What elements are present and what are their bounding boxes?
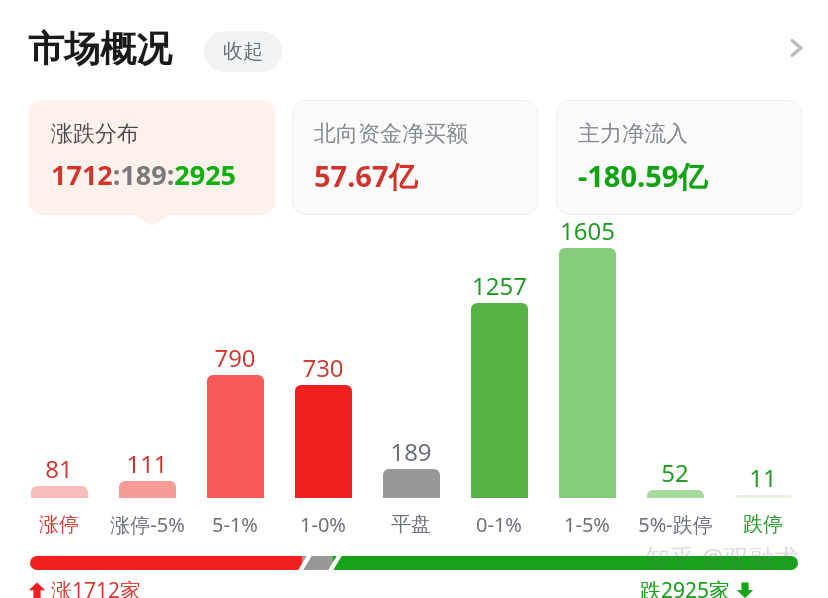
button[interactable]: 平盘 <box>365 508 457 540</box>
staticText: 0-1% <box>476 511 522 538</box>
button[interactable]: 1-5% <box>541 508 633 540</box>
button[interactable]: 涨停-5% <box>101 508 193 540</box>
button[interactable]: 涨停 <box>13 508 105 540</box>
button[interactable]: 主力净流入 <box>556 100 802 215</box>
button[interactable] <box>735 495 792 498</box>
button[interactable] <box>383 469 440 498</box>
button[interactable] <box>207 375 264 498</box>
button[interactable]: 1-0% <box>277 508 369 540</box>
staticText: 1605 <box>560 214 615 247</box>
staticText: 1-0% <box>300 511 346 538</box>
staticText: 1257 <box>472 269 527 302</box>
staticText: 平盘 <box>391 512 431 537</box>
staticText: 5%-跌停 <box>638 511 713 538</box>
staticText: 52 <box>661 456 689 489</box>
staticText: 涨停 <box>39 512 79 537</box>
button[interactable]: 涨1712家 <box>28 576 142 598</box>
button[interactable]: 跌停 <box>717 508 809 540</box>
staticText: 1-5% <box>564 511 610 538</box>
staticText: -180.59亿 <box>578 156 708 196</box>
button[interactable]: 跌2925家 <box>640 576 754 598</box>
button[interactable] <box>31 486 88 498</box>
staticText: 市场概况 <box>28 26 172 71</box>
button[interactable] <box>559 248 616 498</box>
button[interactable]: 北向资金净买额 <box>292 100 538 215</box>
button[interactable]: 5-1% <box>189 508 281 540</box>
staticText: 北向资金净买额 <box>314 120 468 148</box>
staticText: 1712:189:2925 <box>51 156 237 193</box>
staticText: 11 <box>749 461 777 494</box>
staticText: 跌2925家 <box>640 576 731 598</box>
button[interactable]: 收起 <box>204 31 282 72</box>
staticText: 主力净流入 <box>578 120 688 148</box>
button[interactable]: 涨跌分布 <box>29 100 275 215</box>
staticText: 189 <box>390 435 432 468</box>
button[interactable]: 5%-跌停 <box>629 508 721 540</box>
staticText: 790 <box>214 341 256 374</box>
staticText: 知乎 @驭融术 <box>645 540 799 574</box>
staticText: 跌停 <box>743 512 783 537</box>
button[interactable]: 更多 <box>774 26 818 70</box>
staticText: 收起 <box>223 39 263 64</box>
staticText: 涨跌分布 <box>51 120 139 148</box>
staticText: 5-1% <box>212 511 258 538</box>
staticText: 81 <box>45 452 73 485</box>
staticText: 111 <box>126 447 168 480</box>
button[interactable]: 0-1% <box>453 508 545 540</box>
staticText: 涨停-5% <box>110 511 185 538</box>
button[interactable] <box>647 490 704 498</box>
staticText: 57.67亿 <box>314 156 418 196</box>
button[interactable] <box>119 481 176 498</box>
staticText: 涨1712家 <box>51 576 142 598</box>
staticText: 730 <box>302 351 344 384</box>
button[interactable] <box>295 385 352 498</box>
button[interactable] <box>471 303 528 498</box>
